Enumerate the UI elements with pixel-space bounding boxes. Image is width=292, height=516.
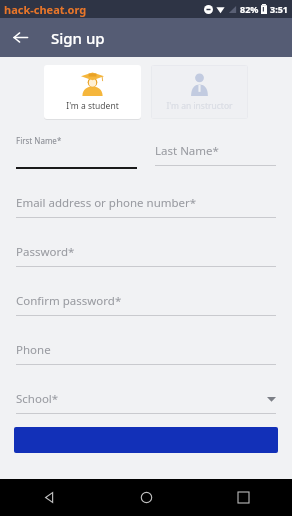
button[interactable]: Password*	[16, 244, 276, 267]
button[interactable]: Phone	[16, 342, 276, 365]
button[interactable]: Back	[0, 479, 98, 516]
staticText: First Name*	[16, 135, 62, 146]
button[interactable]: I'm a student	[44, 65, 141, 119]
button[interactable]: Home	[98, 479, 195, 516]
staticText: School*	[16, 391, 267, 407]
button[interactable]: I'm an instructor	[151, 65, 248, 119]
staticText: 3:51	[270, 3, 288, 15]
staticText: I'm an instructor	[166, 100, 233, 112]
staticText: Confirm password*	[16, 293, 276, 309]
button[interactable]: Email address or phone number*	[16, 195, 276, 218]
button[interactable]: Confirm password*	[16, 293, 276, 316]
staticText: Email address or phone number*	[16, 195, 276, 211]
staticText: I'm a student	[66, 100, 119, 112]
button[interactable]: Back	[0, 18, 40, 57]
staticText: 82%	[240, 3, 259, 15]
button[interactable]	[14, 427, 278, 453]
staticText: Password*	[16, 244, 276, 260]
staticText: Phone	[16, 342, 276, 358]
staticText: Sign up	[51, 28, 105, 48]
staticText: Last Name*	[155, 143, 219, 159]
staticText: hack-cheat.org	[4, 2, 87, 17]
button[interactable]: School*	[16, 391, 276, 414]
button[interactable]: Recent apps	[195, 479, 292, 516]
